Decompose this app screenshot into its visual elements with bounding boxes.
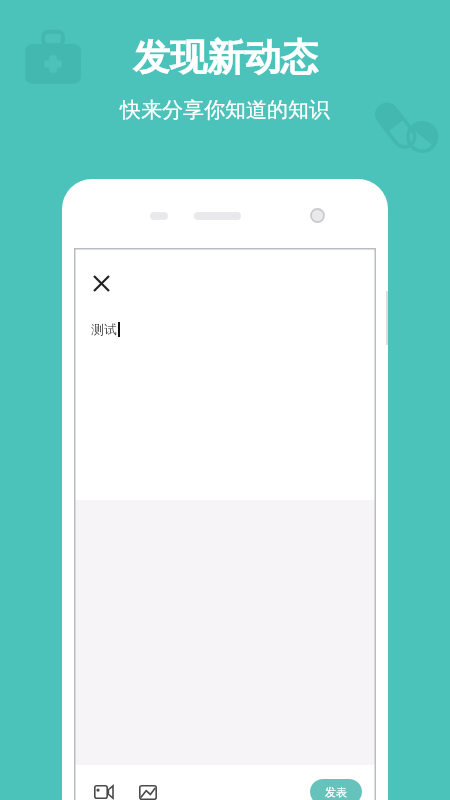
button[interactable]: 发表 xyxy=(310,779,362,800)
staticText: 发现新动态 xyxy=(133,34,318,81)
staticText: 快来分享你知道的知识 xyxy=(120,97,330,123)
button[interactable]: Close xyxy=(84,266,118,300)
staticText: 发表 xyxy=(325,785,347,799)
button[interactable]: Video xyxy=(88,776,120,800)
staticText: 测试 xyxy=(91,321,117,337)
button[interactable]: Image xyxy=(132,776,164,800)
